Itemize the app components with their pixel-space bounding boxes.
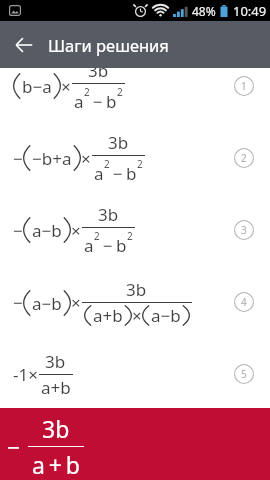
staticText: 2 [241, 151, 247, 165]
staticText: × [132, 304, 142, 327]
staticText: 3b [42, 413, 70, 444]
staticText: 2 [127, 229, 133, 243]
button[interactable]: Back [0, 21, 48, 68]
button[interactable]: − [0, 122, 270, 194]
staticText: × [61, 75, 71, 98]
button[interactable]: − [0, 194, 270, 266]
staticText: a+b [41, 376, 71, 399]
staticText: 48% [192, 3, 216, 19]
staticText: a [84, 234, 94, 257]
staticText: 3 [241, 223, 247, 237]
staticText: b [126, 162, 137, 185]
staticText: −b+a [32, 147, 72, 170]
staticText: Шаги решения [48, 34, 169, 56]
staticText: 4 [241, 295, 247, 309]
button[interactable]: -1× [0, 338, 270, 408]
staticText: 3b [108, 131, 129, 154]
staticText: − [90, 90, 106, 113]
staticText: a + b [32, 449, 80, 480]
staticText: -1× [13, 363, 38, 386]
staticText: a−b [32, 292, 62, 315]
staticText: × [81, 147, 91, 170]
staticText: a [94, 162, 104, 185]
staticText: 3b [98, 203, 119, 226]
button[interactable]: b−a [0, 68, 270, 122]
staticText: − [100, 234, 116, 257]
staticText: − [13, 291, 23, 314]
staticText: − [110, 162, 126, 185]
staticText: a−b [32, 219, 62, 242]
staticText: b [116, 234, 127, 257]
staticText: a−b [151, 304, 181, 327]
staticText: 2 [104, 157, 110, 171]
staticText: 2 [117, 85, 123, 99]
staticText: × [71, 219, 81, 242]
staticText: × [71, 291, 81, 314]
staticText: − [13, 147, 23, 170]
staticText: 2 [84, 85, 90, 99]
staticText: − [7, 431, 21, 462]
staticText: 2 [94, 229, 100, 243]
staticText: 1 [241, 79, 247, 93]
staticText: 3b [88, 68, 109, 82]
staticText: b [106, 90, 117, 113]
staticText: 5 [241, 367, 247, 381]
staticText: a [74, 90, 84, 113]
staticText: 3b [126, 278, 147, 301]
staticText: 2 [137, 157, 143, 171]
staticText: a+b [93, 304, 123, 327]
staticText: 3b [45, 350, 66, 373]
staticText: 10:49 [233, 2, 267, 20]
staticText: b−a [22, 75, 52, 98]
staticText: − [13, 219, 23, 242]
button[interactable]: − [0, 266, 270, 338]
